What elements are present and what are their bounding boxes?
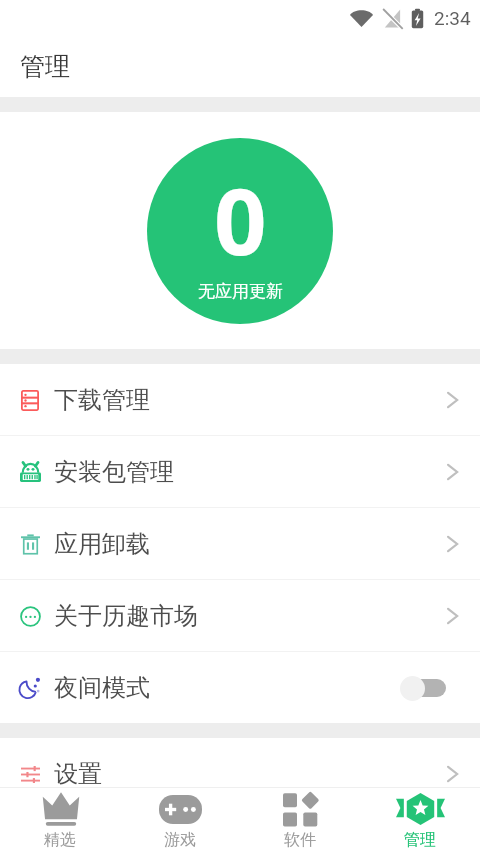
button[interactable]: 精选 <box>0 788 120 853</box>
button[interactable]: 关于历趣市场 <box>0 580 480 651</box>
staticText: 无应用更新 <box>198 281 283 302</box>
staticText: 管理 <box>404 830 436 850</box>
staticText: 游戏 <box>164 830 196 850</box>
button[interactable]: 设置 <box>0 738 480 809</box>
button[interactable]: 夜间模式开关 <box>400 675 458 701</box>
staticText: 2:34 <box>434 7 471 29</box>
button[interactable]: 应用卸载 <box>0 508 480 579</box>
staticText: 软件 <box>284 830 316 850</box>
staticText: 管理 <box>20 51 70 82</box>
staticText: 应用卸载 <box>54 529 150 559</box>
staticText: 关于历趣市场 <box>54 601 198 631</box>
staticText: 安装包管理 <box>54 457 174 487</box>
button[interactable]: 夜间模式 <box>0 652 480 723</box>
staticText: 设置 <box>54 759 102 789</box>
button[interactable]: 安装包管理 <box>0 436 480 507</box>
button[interactable]: 游戏 <box>120 788 240 853</box>
button[interactable]: 管理 <box>360 788 480 853</box>
staticText: 夜间模式 <box>54 673 150 703</box>
button[interactable]: 0 <box>147 138 333 324</box>
button[interactable]: 软件 <box>240 788 360 853</box>
staticText: 下载管理 <box>54 385 150 415</box>
staticText: 精选 <box>44 830 76 850</box>
button[interactable]: 下载管理 <box>0 364 480 435</box>
staticText: 0 <box>214 157 267 282</box>
